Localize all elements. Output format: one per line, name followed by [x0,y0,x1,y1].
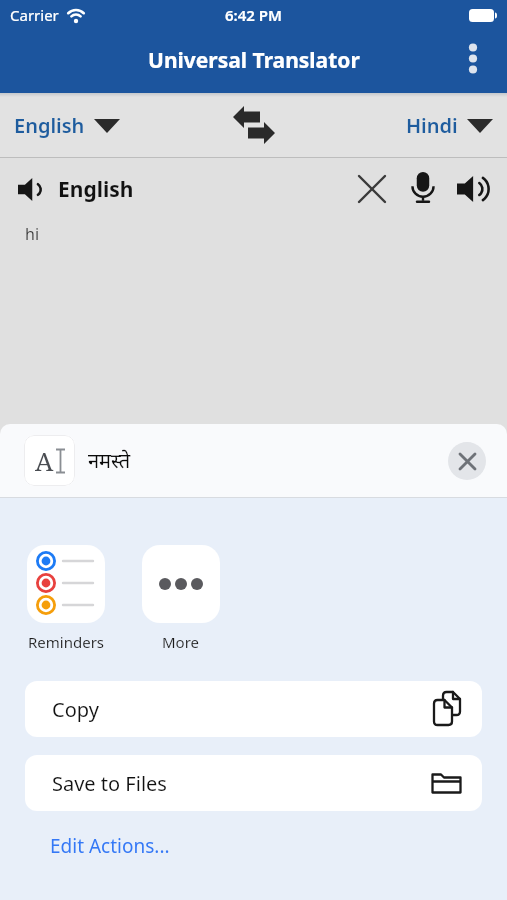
staticText: hi [25,223,40,245]
button[interactable]: Copy [25,681,482,737]
button[interactable] [411,172,435,206]
button[interactable]: Save to Files [25,755,482,811]
staticText: Universal Translator [148,46,360,75]
staticText: Save to Files [52,770,167,797]
staticText: English [14,112,85,139]
button[interactable]: English [14,112,120,139]
staticText: English [58,175,134,204]
button[interactable]: Hindi [406,112,493,139]
button[interactable] [457,176,491,202]
staticText: Hindi [406,112,458,139]
button[interactable] [468,42,478,75]
staticText: 6:42 PM [225,5,282,25]
staticText: A [35,443,54,478]
staticText: नमस्ते [88,447,131,474]
button[interactable]: Reminders [27,545,105,652]
staticText: More [162,632,200,652]
button[interactable] [359,176,385,202]
button[interactable] [448,442,486,480]
staticText: Copy [52,696,99,723]
staticText: Carrier [10,5,59,25]
button[interactable]: Edit Actions... [50,833,170,859]
button[interactable]: More [142,545,220,652]
button[interactable] [233,106,275,144]
staticText: Reminders [28,632,105,652]
